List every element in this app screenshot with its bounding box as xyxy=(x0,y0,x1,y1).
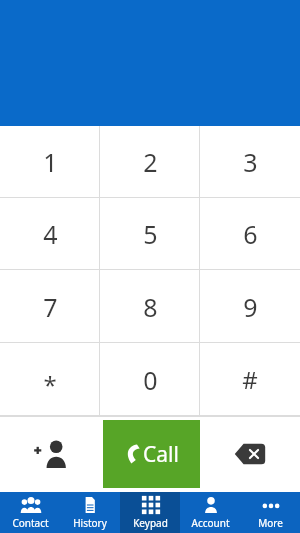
staticText: 0 xyxy=(143,363,158,397)
staticText: 4 xyxy=(43,217,58,251)
button[interactable]: Contact xyxy=(0,492,60,533)
staticText: 3 xyxy=(243,145,258,179)
button[interactable]: 5 xyxy=(100,198,200,270)
staticText: History xyxy=(73,516,107,530)
button[interactable]: 8 xyxy=(100,270,200,343)
staticText: * xyxy=(43,368,57,401)
button[interactable]: # xyxy=(200,343,300,416)
staticText: Keypad xyxy=(133,516,168,530)
button[interactable]: 7 xyxy=(0,270,100,343)
button[interactable]: Account xyxy=(180,492,240,533)
button[interactable]: History xyxy=(60,492,120,533)
button[interactable]: 1 xyxy=(0,126,100,198)
button[interactable]: 3 xyxy=(200,126,300,198)
button[interactable]: Keypad xyxy=(120,492,180,533)
button[interactable]: 4 xyxy=(0,198,100,270)
button[interactable]: More xyxy=(240,492,300,533)
button[interactable]: 6 xyxy=(200,198,300,270)
staticText: 7 xyxy=(43,290,58,324)
button[interactable]: * xyxy=(0,343,100,416)
staticText: Contact xyxy=(12,516,49,530)
staticText: 1 xyxy=(43,145,58,179)
button[interactable]: 0 xyxy=(100,343,200,416)
staticText: 2 xyxy=(143,145,158,179)
staticText: 9 xyxy=(243,290,258,324)
button[interactable]: Call xyxy=(103,420,200,488)
staticText: 8 xyxy=(143,290,158,324)
staticText: 5 xyxy=(143,217,158,251)
staticText: # xyxy=(242,363,258,396)
staticText: Account xyxy=(191,516,230,530)
staticText: 6 xyxy=(243,217,258,251)
button[interactable]: Backspace xyxy=(200,416,300,492)
button[interactable]: Add contact xyxy=(0,416,103,492)
button[interactable]: 9 xyxy=(200,270,300,343)
button[interactable]: 2 xyxy=(100,126,200,198)
staticText: Call xyxy=(143,440,179,469)
staticText: More xyxy=(258,516,283,530)
